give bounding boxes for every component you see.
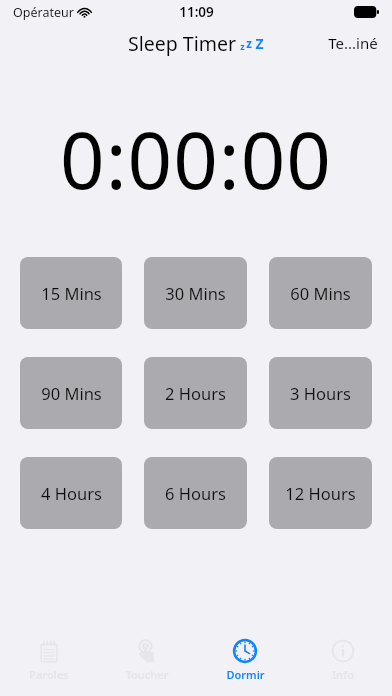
button[interactable]: 4 Hours (20, 457, 122, 529)
staticText: 12 Hours (285, 482, 356, 504)
staticText: Dormir (226, 667, 265, 682)
staticText: 30 Mins (165, 282, 226, 304)
staticText: 15 Mins (41, 282, 102, 304)
button[interactable]: Dormir (196, 632, 294, 690)
staticText: 4 Hours (41, 482, 102, 504)
staticText: 11:09 (179, 3, 214, 21)
staticText: 60 Mins (290, 282, 351, 304)
button[interactable]: 12 Hours (269, 457, 372, 529)
staticText: 90 Mins (41, 382, 102, 404)
staticText: Info (332, 667, 354, 682)
staticText: Toucher (125, 667, 169, 682)
button[interactable]: 90 Mins (20, 357, 122, 429)
button[interactable]: 2 Hours (144, 357, 247, 429)
button[interactable]: 30 Mins (144, 257, 247, 329)
button[interactable]: 3 Hours (269, 357, 372, 429)
staticText: Paroles (29, 667, 69, 682)
staticText: 2 Hours (165, 382, 226, 404)
staticText: z (246, 36, 252, 52)
button[interactable]: 15 Mins (20, 257, 122, 329)
staticText: Sleep Timer (128, 30, 236, 57)
staticText: 6 Hours (165, 482, 226, 504)
staticText: z (240, 40, 245, 52)
staticText: Z (255, 34, 264, 53)
staticText: Opérateur (13, 4, 74, 21)
staticText: 3 Hours (290, 382, 351, 404)
button[interactable]: Te...iné (324, 27, 382, 59)
staticText: 0:00:00 (60, 106, 332, 212)
staticText: Te...iné (328, 33, 378, 53)
button[interactable]: 6 Hours (144, 457, 247, 529)
button[interactable]: 60 Mins (269, 257, 372, 329)
